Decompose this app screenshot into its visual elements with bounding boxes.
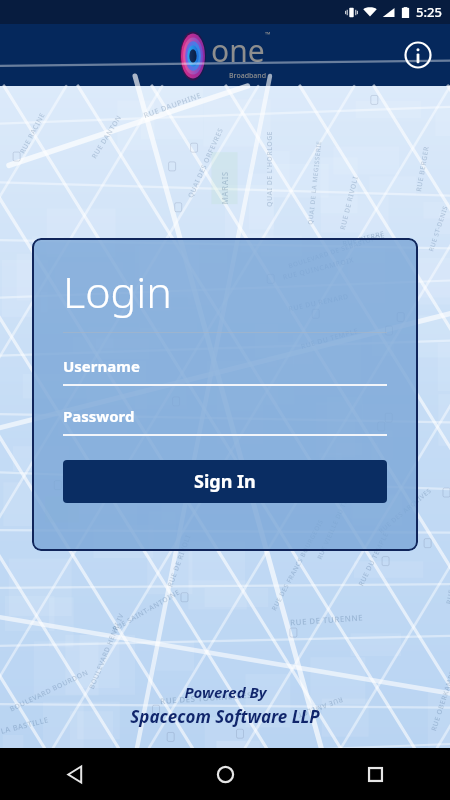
staticText: RUE RACINE: [18, 110, 48, 156]
staticText: RUE AMELOT: [296, 694, 344, 720]
staticText: RUE BERGER: [414, 145, 432, 192]
button[interactable]: Username: [63, 356, 387, 376]
staticText: RUE PIERRE: [341, 229, 386, 249]
staticText: RUE SAINT-ANTOINE: [111, 587, 182, 635]
staticText: RUE DANTON: [89, 113, 124, 161]
button[interactable]: Information: [398, 35, 438, 75]
staticText: BOULEVARD HENRI IV: [87, 611, 127, 691]
staticText: ™: [265, 30, 271, 40]
staticText: QUAI DE LA MEGISSERIE: [306, 140, 323, 225]
staticText: RUE ST-DENIS: [426, 204, 450, 253]
staticText: RUE DE BRETAGNE: [444, 537, 450, 605]
staticText: Password: [63, 406, 135, 426]
staticText: Spacecom Software LLP: [130, 705, 320, 728]
staticText: RUE DU TEMPLE: [300, 326, 360, 352]
staticText: MARAIS: [218, 170, 229, 204]
staticText: QUAI DES ORFEVRES: [186, 126, 226, 200]
button[interactable]: Back: [0, 748, 150, 800]
button[interactable]: Sign In: [63, 460, 387, 503]
staticText: one: [211, 30, 265, 71]
staticText: RUE DES TOURNELLES: [160, 689, 252, 706]
staticText: Powered By: [184, 682, 267, 702]
staticText: Login: [63, 262, 172, 321]
staticText: RUE DES FRANCS BOURGEOIS: [269, 517, 326, 612]
staticText: Sign In: [194, 469, 256, 494]
button[interactable]: Home: [150, 748, 300, 800]
staticText: RUE DE RIVOLI: [165, 533, 194, 588]
staticText: RUE DAUPHINE: [142, 90, 203, 120]
button[interactable]: Password: [63, 406, 387, 426]
staticText: RUE DES ARCHIVES: [377, 486, 433, 535]
staticText: Username: [63, 356, 140, 376]
staticText: RUE DU TEMPLE: [356, 530, 392, 588]
staticText: RUE VIEILLE DU TEMPLE: [315, 480, 357, 561]
staticText: RUE DE TURENNE: [290, 611, 363, 628]
button[interactable]: Recent apps: [300, 748, 450, 800]
staticText: BOULEVARD BOURDON: [8, 667, 91, 714]
staticText: RUE OBERKAMPF: [429, 669, 450, 732]
staticText: 5:25: [416, 3, 442, 21]
staticText: BOULEVARD DE SEBASTOPOL: [287, 231, 386, 270]
staticText: QUAI DE L'HORLOGE: [265, 131, 275, 207]
staticText: LA BASTILLE: [0, 714, 50, 736]
staticText: RUE DE RIVOLI: [338, 175, 361, 231]
staticText: Broadband: [229, 71, 267, 81]
